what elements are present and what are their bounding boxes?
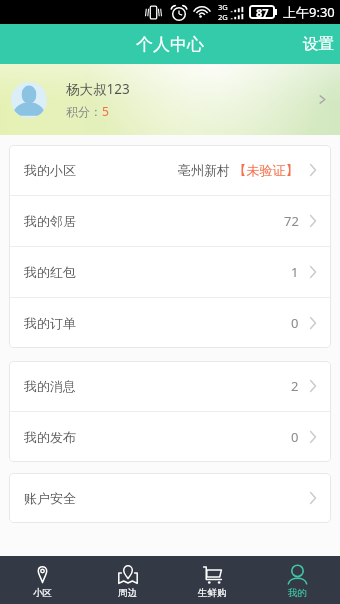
other: Community [35,565,50,583]
staticText: 账户安全 [24,490,76,506]
other: Mine [288,565,307,584]
button[interactable]: Nearby [85,556,170,604]
staticText: 87 [256,5,269,19]
button[interactable]: 账户安全 [9,473,331,523]
button[interactable]: Mine [255,556,340,604]
staticText: 72 [284,212,299,230]
staticText: 我的小区 [24,162,76,178]
staticText: 3G [218,2,228,12]
staticText: 设置 [303,34,334,54]
staticText: 2G [218,12,228,22]
staticText: 亳州新村 【未验证】 [178,161,299,179]
button[interactable]: 我的小区 [9,145,331,195]
other: Fresh shop [203,565,222,584]
button[interactable]: 我的订单 [9,298,331,348]
staticText: 0 [291,314,299,332]
staticText: 0 [291,428,299,446]
staticText: 我的红包 [24,264,76,280]
staticText: 上午9:30 [283,3,335,21]
staticText: 我的 [288,587,307,599]
button[interactable]: 我的发布 [9,412,331,462]
staticText: 杨大叔123 [66,80,130,98]
button[interactable]: 我的消息 [9,361,331,411]
other: Nearby [118,565,138,584]
button[interactable]: 设置 [291,24,340,64]
staticText: 我的订单 [24,315,76,331]
staticText: 我的消息 [24,378,76,394]
staticText: 2 [291,377,299,395]
staticText: 我的邻居 [24,213,76,229]
staticText: 个人中心 [136,34,204,55]
staticText: 积分：5 [66,103,109,119]
staticText: 1 [291,263,299,281]
staticText: 周边 [118,587,137,599]
button[interactable]: Community [0,556,85,604]
button[interactable]: Fresh shop [170,556,255,604]
staticText: 我的发布 [24,429,76,445]
staticText: 生鲜购 [198,587,227,599]
button[interactable]: 我的邻居 [9,196,331,246]
button[interactable]: 杨大叔123 [0,64,340,135]
button[interactable]: 我的红包 [9,247,331,297]
staticText: 小区 [33,587,52,599]
